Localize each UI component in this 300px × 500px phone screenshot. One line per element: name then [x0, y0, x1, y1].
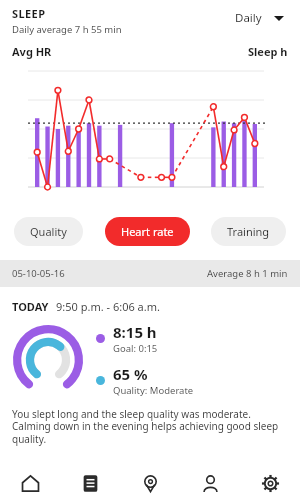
- button[interactable]: Quality: [14, 217, 83, 246]
- staticText: 05-10-05-16: [12, 267, 65, 280]
- staticText: SLEEP: [12, 6, 46, 21]
- staticText: TODAY: [12, 299, 49, 314]
- staticText: Sleep h: [248, 44, 288, 59]
- staticText: 65 %: [113, 364, 148, 384]
- button[interactable]: Home: [0, 466, 60, 500]
- staticText: Quality: [30, 224, 67, 239]
- staticText: Daily: [235, 10, 262, 26]
- button[interactable]: Profile: [180, 466, 240, 500]
- button[interactable]: Diary: [60, 466, 120, 500]
- staticText: Goal: 0:15: [113, 342, 158, 355]
- button[interactable]: TODAY: [0, 287, 300, 446]
- staticText: Heart rate: [121, 224, 174, 239]
- staticText: Daily average 7 h 55 min: [12, 23, 122, 36]
- staticText: Training: [227, 224, 270, 239]
- staticText: 8:15 h: [113, 322, 157, 342]
- button[interactable]: Training: [211, 217, 286, 246]
- button[interactable]: Settings: [240, 466, 300, 500]
- staticText: 9:50 p.m. - 6:06 a.m.: [56, 299, 160, 314]
- staticText: Quality: Moderate: [113, 384, 194, 397]
- button[interactable]: Places: [120, 466, 180, 500]
- staticText: Avg HR: [12, 44, 52, 59]
- button[interactable]: Daily: [229, 6, 290, 30]
- staticText: You slept long and the sleep quality was…: [12, 407, 286, 446]
- staticText: Average 8 h 1 min: [207, 267, 288, 280]
- button[interactable]: Heart rate: [105, 217, 190, 246]
